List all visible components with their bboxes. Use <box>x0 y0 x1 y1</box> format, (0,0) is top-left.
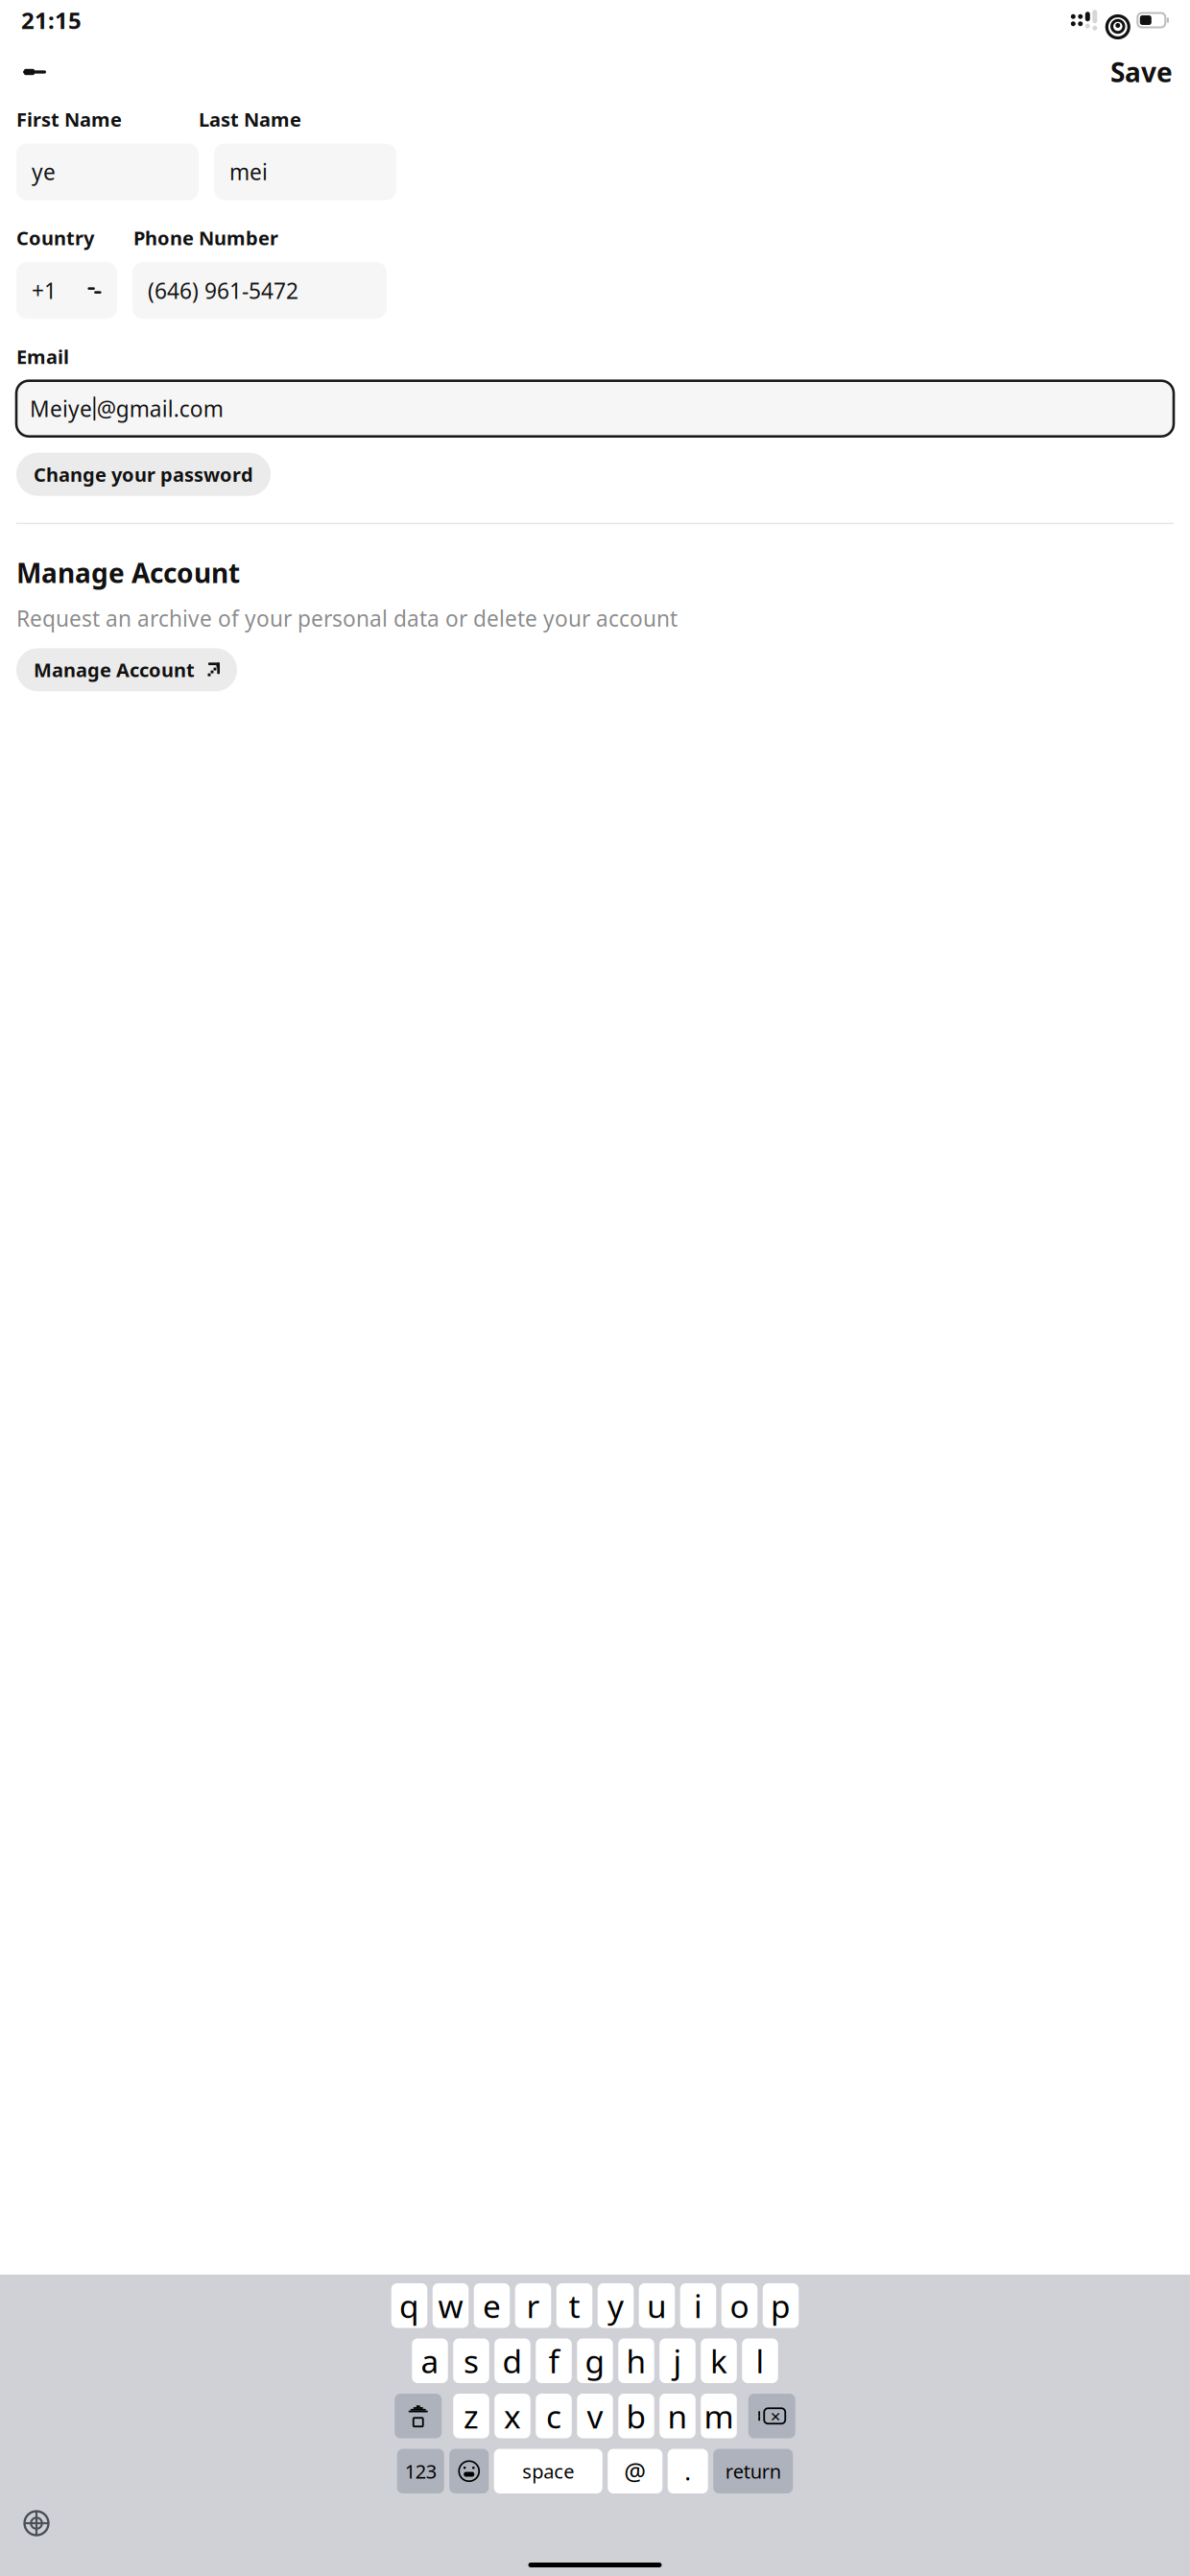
button[interactable]: Save <box>1106 50 1178 94</box>
button[interactable]: q <box>391 2283 427 2328</box>
button[interactable]: Country code +1 <box>16 262 117 319</box>
staticText: a <box>421 2340 439 2382</box>
staticText: x <box>504 2395 521 2437</box>
button[interactable]: @ <box>608 2449 662 2493</box>
staticText: +1 <box>32 276 57 305</box>
staticText: s <box>464 2340 479 2382</box>
staticText: Request an archive of your personal data… <box>16 604 678 633</box>
staticText: w <box>438 2284 463 2327</box>
button[interactable]: z <box>453 2394 489 2438</box>
button[interactable]: Back <box>12 50 57 94</box>
staticText: 21:15 <box>21 5 82 36</box>
staticText: z <box>464 2395 479 2437</box>
button[interactable]: Delete <box>748 2394 795 2438</box>
staticText: u <box>647 2284 667 2327</box>
button[interactable]: o <box>721 2283 757 2328</box>
staticText: space <box>522 2458 574 2484</box>
staticText: return <box>725 2458 781 2484</box>
staticText: p <box>771 2284 791 2327</box>
staticText: mei <box>229 157 268 186</box>
staticText: c <box>546 2395 561 2437</box>
button[interactable]: space <box>494 2449 602 2493</box>
staticText: Email <box>16 344 69 369</box>
staticText: Meiye <box>30 394 92 423</box>
button[interactable]: Shift <box>395 2394 442 2438</box>
button[interactable]: e <box>474 2283 510 2328</box>
button[interactable]: s <box>453 2338 489 2383</box>
button[interactable]: v <box>577 2394 613 2438</box>
button[interactable]: ye <box>16 144 199 200</box>
button[interactable]: (646) 961-5472 <box>132 262 387 319</box>
staticText: Country <box>16 225 94 251</box>
staticText: v <box>587 2395 603 2437</box>
button[interactable]: h <box>618 2338 654 2383</box>
staticText: t <box>569 2284 580 2327</box>
button[interactable]: x <box>494 2394 530 2438</box>
staticText: o <box>730 2284 749 2327</box>
button[interactable]: b <box>618 2394 654 2438</box>
staticText: @gmail.com <box>97 394 223 423</box>
button[interactable]: y <box>598 2283 634 2328</box>
staticText: n <box>667 2395 688 2437</box>
staticText: j <box>673 2340 682 2382</box>
staticText: l <box>756 2340 764 2382</box>
staticText: m <box>704 2395 734 2437</box>
staticText: b <box>626 2395 646 2437</box>
button[interactable]: d <box>494 2338 530 2383</box>
button[interactable]: mei <box>214 144 396 200</box>
button[interactable]: Meiye <box>16 381 1174 436</box>
staticText: q <box>399 2284 419 2327</box>
button[interactable]: Emoji <box>449 2449 489 2493</box>
staticText: 123 <box>405 2458 436 2484</box>
staticText: i <box>694 2284 702 2327</box>
button[interactable]: Change your password <box>16 453 271 496</box>
staticText: Manage Account <box>34 657 195 683</box>
staticText: Save <box>1110 54 1173 90</box>
staticText: ye <box>32 157 56 186</box>
button[interactable]: f <box>536 2338 572 2383</box>
button[interactable]: Next keyboard <box>15 2506 58 2540</box>
button[interactable]: a <box>412 2338 448 2383</box>
staticText: d <box>502 2340 523 2382</box>
staticText: (646) 961-5472 <box>148 276 298 305</box>
staticText: @ <box>624 2455 646 2487</box>
staticText: e <box>483 2284 501 2327</box>
button[interactable]: r <box>515 2283 551 2328</box>
staticText: . <box>684 2455 691 2487</box>
button[interactable]: return <box>713 2449 793 2493</box>
button[interactable]: c <box>536 2394 572 2438</box>
staticText: y <box>607 2284 624 2327</box>
staticText: Change your password <box>34 462 253 487</box>
button[interactable]: w <box>433 2283 469 2328</box>
button[interactable]: u <box>639 2283 675 2328</box>
staticText: × <box>770 2404 781 2428</box>
staticText: h <box>626 2340 646 2382</box>
staticText: f <box>548 2340 559 2382</box>
button[interactable]: g <box>577 2338 613 2383</box>
button[interactable]: l <box>742 2338 778 2383</box>
button[interactable]: n <box>659 2394 695 2438</box>
button[interactable]: t <box>556 2283 592 2328</box>
button[interactable]: i <box>680 2283 716 2328</box>
button[interactable]: k <box>701 2338 737 2383</box>
button[interactable]: 123 <box>397 2449 444 2493</box>
button[interactable]: Manage Account <box>16 648 237 691</box>
button[interactable]: m <box>701 2394 737 2438</box>
button[interactable]: j <box>659 2338 695 2383</box>
button[interactable]: p <box>763 2283 799 2328</box>
staticText: Phone Number <box>133 225 278 251</box>
staticText: k <box>710 2340 727 2382</box>
staticText: g <box>585 2340 605 2382</box>
staticText: r <box>526 2284 540 2327</box>
button[interactable]: . <box>668 2449 708 2493</box>
staticText: Manage Account <box>16 555 240 591</box>
staticText: Last Name <box>199 107 301 132</box>
staticText: First Name <box>16 107 122 132</box>
